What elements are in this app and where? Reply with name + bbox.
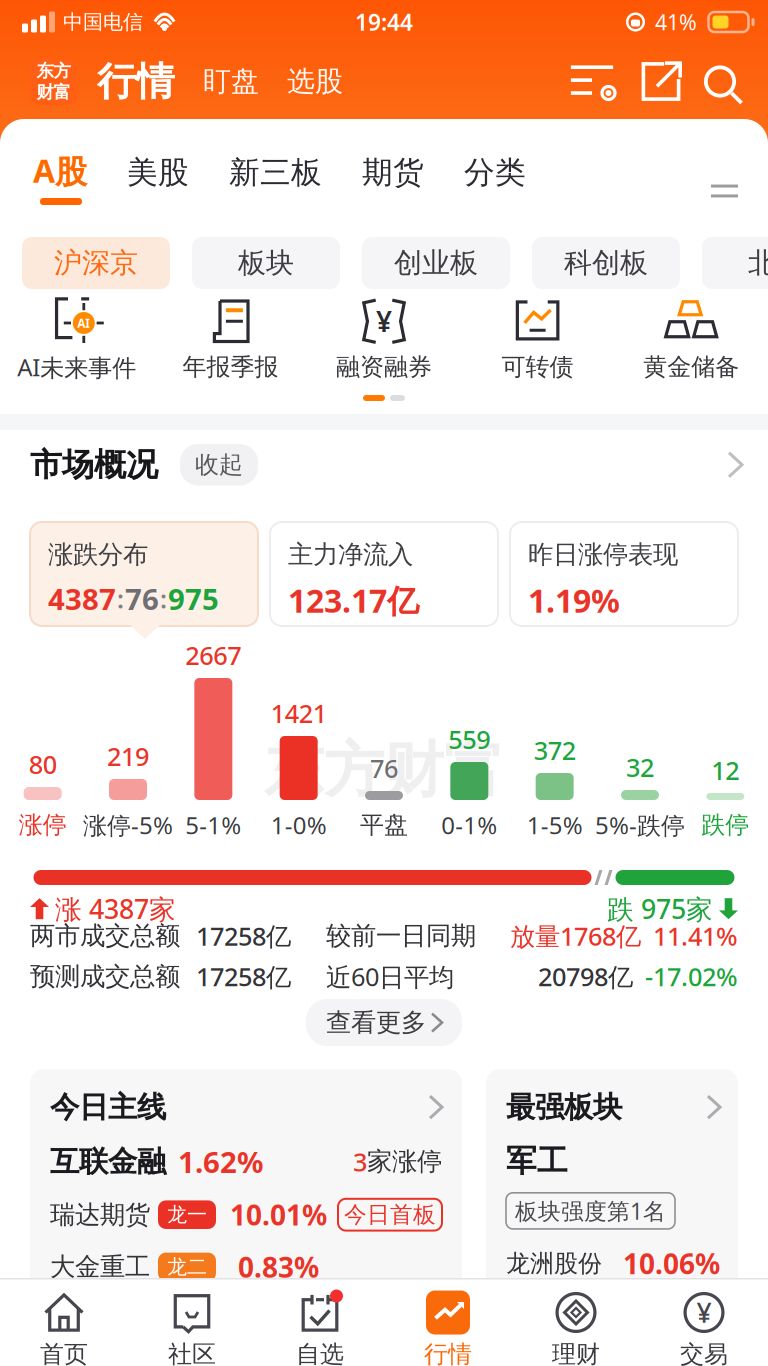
staticText: 创业板 [394, 246, 478, 280]
button[interactable]: 列表设置 [566, 60, 618, 102]
staticText: 今日首板 [344, 1201, 436, 1229]
button[interactable]: 涨跌分布 [30, 522, 258, 626]
staticText: 军工 [506, 1142, 568, 1180]
button[interactable]: 盯盘 [175, 64, 259, 99]
staticText: 市场概况 [30, 445, 158, 484]
staticText: 瑞达期货 [50, 1199, 150, 1230]
button[interactable]: 美股 [127, 154, 189, 191]
staticText: 5-1% [185, 809, 241, 841]
staticText: : [117, 582, 124, 615]
staticText: 559 [448, 722, 490, 756]
staticText: 975 [168, 579, 219, 618]
button[interactable]: 分类 [464, 154, 526, 191]
button[interactable]: ¥ [640, 1290, 768, 1366]
button[interactable]: 选股 [259, 64, 343, 99]
staticText: 大金重工 [50, 1251, 150, 1282]
staticText: : [160, 582, 167, 615]
staticText: 东方 [36, 60, 70, 81]
staticText: 行情 [424, 1339, 472, 1366]
staticText: 123.17亿 [288, 579, 419, 622]
staticText: 中国电信 [63, 10, 143, 34]
button[interactable]: 行情 [384, 1290, 512, 1366]
button[interactable]: 更多市场 [711, 183, 738, 200]
staticText: A股 [33, 149, 87, 192]
staticText: 期货 [362, 154, 424, 191]
button[interactable]: 市场概况详情 [729, 453, 742, 477]
button[interactable]: 科创板 [532, 237, 680, 289]
staticText: 32 [626, 750, 654, 784]
button[interactable]: 分享 [618, 60, 682, 102]
staticText: -17.02% [645, 960, 738, 993]
staticText: AI未来事件 [17, 351, 136, 383]
staticText: 板块强度第1名 [515, 1196, 666, 1226]
staticText: 龙洲股份 [506, 1249, 602, 1278]
staticText: 放量1768亿 [510, 919, 641, 953]
staticText: 可转债 [502, 352, 574, 382]
button[interactable]: 昨日涨停表现 [510, 522, 738, 626]
staticText: 17258亿 [196, 960, 291, 993]
staticText: 昨日涨停表现 [528, 539, 678, 570]
staticText: 东方财富 [264, 733, 504, 807]
staticText: 财富 [36, 81, 70, 103]
button[interactable]: 最强板块 [486, 1069, 738, 1319]
button[interactable]: 沪深京 [22, 237, 170, 289]
button[interactable]: AI [0, 297, 154, 383]
staticText: ¥ [696, 1295, 711, 1330]
button[interactable]: 创业板 [362, 237, 510, 289]
staticText: 跌停 [701, 810, 749, 840]
staticText: 11.41% [653, 919, 738, 953]
staticText: 80 [29, 747, 57, 781]
button[interactable]: 板块 [192, 237, 340, 289]
staticText: 年报季报 [182, 352, 278, 382]
staticText: 12 [711, 753, 739, 787]
staticText: 1-0% [271, 809, 327, 841]
button[interactable]: 主力净流入 [270, 522, 498, 626]
staticText: 3 [353, 1145, 367, 1178]
button[interactable]: 北京 [702, 237, 768, 289]
staticText: 372 [534, 733, 576, 767]
button[interactable]: 查看更多 [306, 999, 462, 1046]
staticText: 收起 [195, 450, 243, 479]
staticText: 预测成交总额 [30, 961, 180, 992]
staticText: 黄金储备 [643, 352, 739, 382]
staticText: 最强板块 [506, 1089, 622, 1125]
staticText: 涨停-5% [83, 809, 173, 841]
staticText: 查看更多 [326, 1007, 426, 1038]
staticText: 1.19% [528, 579, 620, 622]
button[interactable]: 理财 [512, 1290, 640, 1366]
staticText: 4387 [48, 579, 116, 618]
button[interactable]: 自选 [256, 1290, 384, 1366]
staticText: 自选 [296, 1339, 344, 1366]
button[interactable]: 黄金储备 [614, 298, 768, 382]
staticText: 首页 [40, 1339, 88, 1366]
button[interactable]: 新三板 [229, 154, 322, 191]
button[interactable]: 可转债 [461, 298, 614, 382]
button[interactable]: A股 [33, 149, 87, 192]
button[interactable]: 年报季报 [154, 298, 307, 382]
button[interactable]: 行情 [77, 58, 175, 105]
staticText: 科创板 [564, 246, 648, 280]
button[interactable]: 期货 [362, 154, 424, 191]
staticText: 较前一日同期 [326, 920, 476, 951]
staticText: 盯盘 [203, 64, 259, 99]
staticText: 北京 [748, 246, 768, 280]
button[interactable]: 首页 [0, 1290, 128, 1366]
staticText: 1-5% [527, 809, 583, 841]
staticText: 融资融券 [336, 352, 432, 382]
button[interactable]: ¥ [307, 298, 461, 382]
button[interactable]: 社区 [128, 1290, 256, 1366]
staticText: 5%-跌停 [595, 809, 685, 841]
staticText: 41% [655, 8, 697, 36]
staticText: 1421 [271, 696, 327, 730]
staticText: 沪深京 [54, 246, 138, 280]
staticText: 社区 [168, 1339, 216, 1366]
staticText: 1.62% [178, 1142, 263, 1181]
staticText: 分类 [464, 154, 526, 191]
staticText: 涨跌分布 [48, 539, 148, 570]
button[interactable]: 收起 [180, 444, 258, 485]
button[interactable]: 搜索 [682, 61, 768, 101]
button[interactable]: 今日主线 [30, 1069, 462, 1319]
staticText: 新三板 [229, 154, 322, 191]
staticText: 龙二 [167, 1255, 207, 1279]
staticText: 选股 [287, 64, 343, 99]
